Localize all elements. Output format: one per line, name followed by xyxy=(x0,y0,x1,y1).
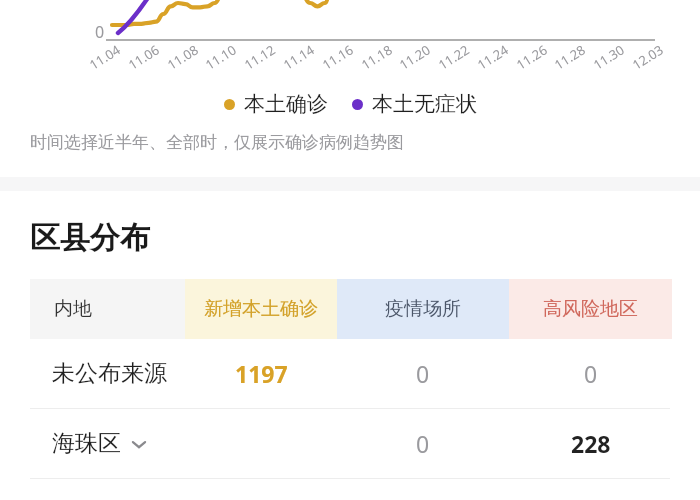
staticText: 11.26 xyxy=(513,40,551,74)
staticText: 海珠区 xyxy=(52,429,121,458)
staticText: 内地 xyxy=(54,297,92,321)
button[interactable]: 高风险地区 xyxy=(509,279,672,339)
staticText: 本土无症状 xyxy=(372,91,477,117)
staticText: 区县分布 xyxy=(30,219,150,257)
button[interactable]: 本土无症状 xyxy=(352,91,477,117)
staticText: 本土确诊 xyxy=(244,91,328,117)
staticText: 12.03 xyxy=(629,40,667,74)
staticText: 新增本土确诊 xyxy=(204,297,318,321)
staticText: 0 xyxy=(416,358,430,389)
button[interactable]: 未公布来源 xyxy=(0,339,700,408)
staticText: 0 xyxy=(95,21,105,43)
staticText: 11.16 xyxy=(319,40,357,74)
staticText: 228 xyxy=(571,428,611,459)
button[interactable]: 新增本土确诊 xyxy=(185,279,337,339)
button[interactable]: 疫情场所 xyxy=(337,279,509,339)
staticText: 11.24 xyxy=(474,40,512,74)
staticText: 11.08 xyxy=(164,40,202,74)
staticText: 疫情场所 xyxy=(385,297,461,321)
staticText: 高风险地区 xyxy=(543,297,638,321)
staticText: 11.04 xyxy=(86,40,124,74)
staticText: 11.06 xyxy=(125,40,163,74)
staticText: 0 xyxy=(416,428,430,459)
staticText: 11.20 xyxy=(396,40,434,74)
button[interactable]: 本土确诊 xyxy=(224,91,328,117)
button[interactable]: 海珠区 xyxy=(0,409,700,478)
staticText: 11.22 xyxy=(435,40,473,74)
staticText: 1197 xyxy=(235,358,288,389)
staticText: 11.10 xyxy=(202,40,240,74)
staticText: 时间选择近半年、全部时，仅展示确诊病例趋势图 xyxy=(30,132,404,153)
staticText: 11.14 xyxy=(280,40,318,74)
staticText: 0 xyxy=(584,358,598,389)
staticText: 11.18 xyxy=(358,40,396,74)
staticText: 未公布来源 xyxy=(52,359,167,388)
other: 展开 xyxy=(131,436,147,452)
staticText: 11.12 xyxy=(241,40,279,74)
staticText: 11.28 xyxy=(551,40,589,74)
button[interactable]: 内地 xyxy=(30,279,185,339)
staticText: 11.30 xyxy=(590,40,628,74)
